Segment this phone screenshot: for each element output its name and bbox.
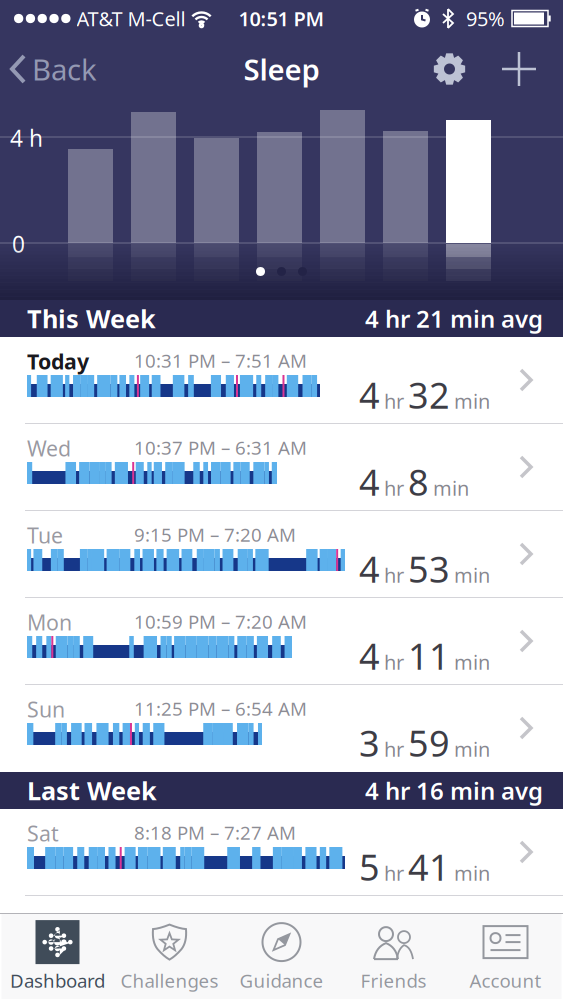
- staticText: AT&T M-Cell: [76, 5, 185, 32]
- staticText: 4 h: [10, 123, 43, 153]
- staticText: 10:59 PM – 7:20 AM: [134, 609, 307, 634]
- staticText: min: [454, 736, 490, 762]
- staticText: Tue: [27, 521, 63, 549]
- staticText: Sat: [27, 819, 59, 847]
- staticText: 4: [359, 371, 380, 419]
- staticText: Last Week: [27, 774, 157, 807]
- staticText: Back: [32, 49, 97, 88]
- staticText: 3: [359, 719, 380, 767]
- staticText: 4: [359, 632, 380, 680]
- button[interactable]: Challenges: [113, 914, 225, 998]
- staticText: 8: [408, 458, 429, 506]
- button[interactable]: Wed: [0, 424, 563, 511]
- button[interactable]: [433, 52, 466, 85]
- staticText: Mon: [27, 608, 72, 636]
- staticText: 53: [408, 545, 450, 593]
- button[interactable]: Tue: [0, 511, 563, 598]
- button[interactable]: Account: [449, 914, 561, 998]
- staticText: min: [454, 388, 490, 414]
- staticText: 10:37 PM – 6:31 AM: [134, 435, 307, 460]
- staticText: hr: [384, 562, 404, 588]
- staticText: This Week: [27, 302, 156, 335]
- staticText: hr: [384, 649, 404, 675]
- staticText: Today: [27, 347, 89, 375]
- staticText: Account: [469, 968, 541, 993]
- button[interactable]: Back: [0, 49, 97, 88]
- staticText: 59: [408, 719, 450, 767]
- staticText: min: [454, 562, 490, 588]
- button[interactable]: Friends: [337, 914, 449, 998]
- staticText: Dashboard: [10, 968, 105, 993]
- staticText: 4 hr 21 min avg: [365, 303, 543, 334]
- staticText: min: [454, 860, 490, 886]
- staticText: 9:15 PM – 7:20 AM: [134, 522, 296, 547]
- button[interactable]: Today: [0, 337, 563, 424]
- button[interactable]: Sun: [0, 685, 563, 772]
- staticText: 4: [359, 545, 380, 593]
- staticText: Challenges: [120, 968, 218, 993]
- staticText: 4 hr 16 min avg: [365, 775, 543, 806]
- staticText: 95%: [466, 5, 505, 32]
- staticText: min: [454, 649, 490, 675]
- staticText: Wed: [27, 434, 71, 462]
- staticText: hr: [384, 475, 404, 501]
- staticText: 41: [408, 843, 450, 891]
- staticText: min: [433, 475, 469, 501]
- staticText: hr: [384, 736, 404, 762]
- staticText: Sun: [27, 695, 65, 723]
- button[interactable]: [466, 52, 563, 86]
- staticText: Sleep: [243, 49, 319, 88]
- staticText: Guidance: [239, 968, 323, 993]
- staticText: hr: [384, 860, 404, 886]
- staticText: hr: [384, 388, 404, 414]
- button[interactable]: Mon: [0, 598, 563, 685]
- staticText: Friends: [360, 968, 426, 993]
- staticText: 11: [408, 632, 450, 680]
- button[interactable]: Sat: [0, 809, 563, 896]
- staticText: 10:31 PM – 7:51 AM: [134, 348, 307, 373]
- button[interactable]: Guidance: [225, 914, 337, 998]
- staticText: 11:25 PM – 6:54 AM: [134, 696, 307, 721]
- staticText: 0: [12, 229, 25, 259]
- button[interactable]: Dashboard: [1, 914, 113, 998]
- staticText: 8:18 PM – 7:27 AM: [134, 820, 296, 845]
- staticText: 5: [359, 843, 380, 891]
- staticText: 32: [408, 371, 450, 419]
- staticText: 10:51 PM: [238, 5, 324, 32]
- staticText: 4: [359, 458, 380, 506]
